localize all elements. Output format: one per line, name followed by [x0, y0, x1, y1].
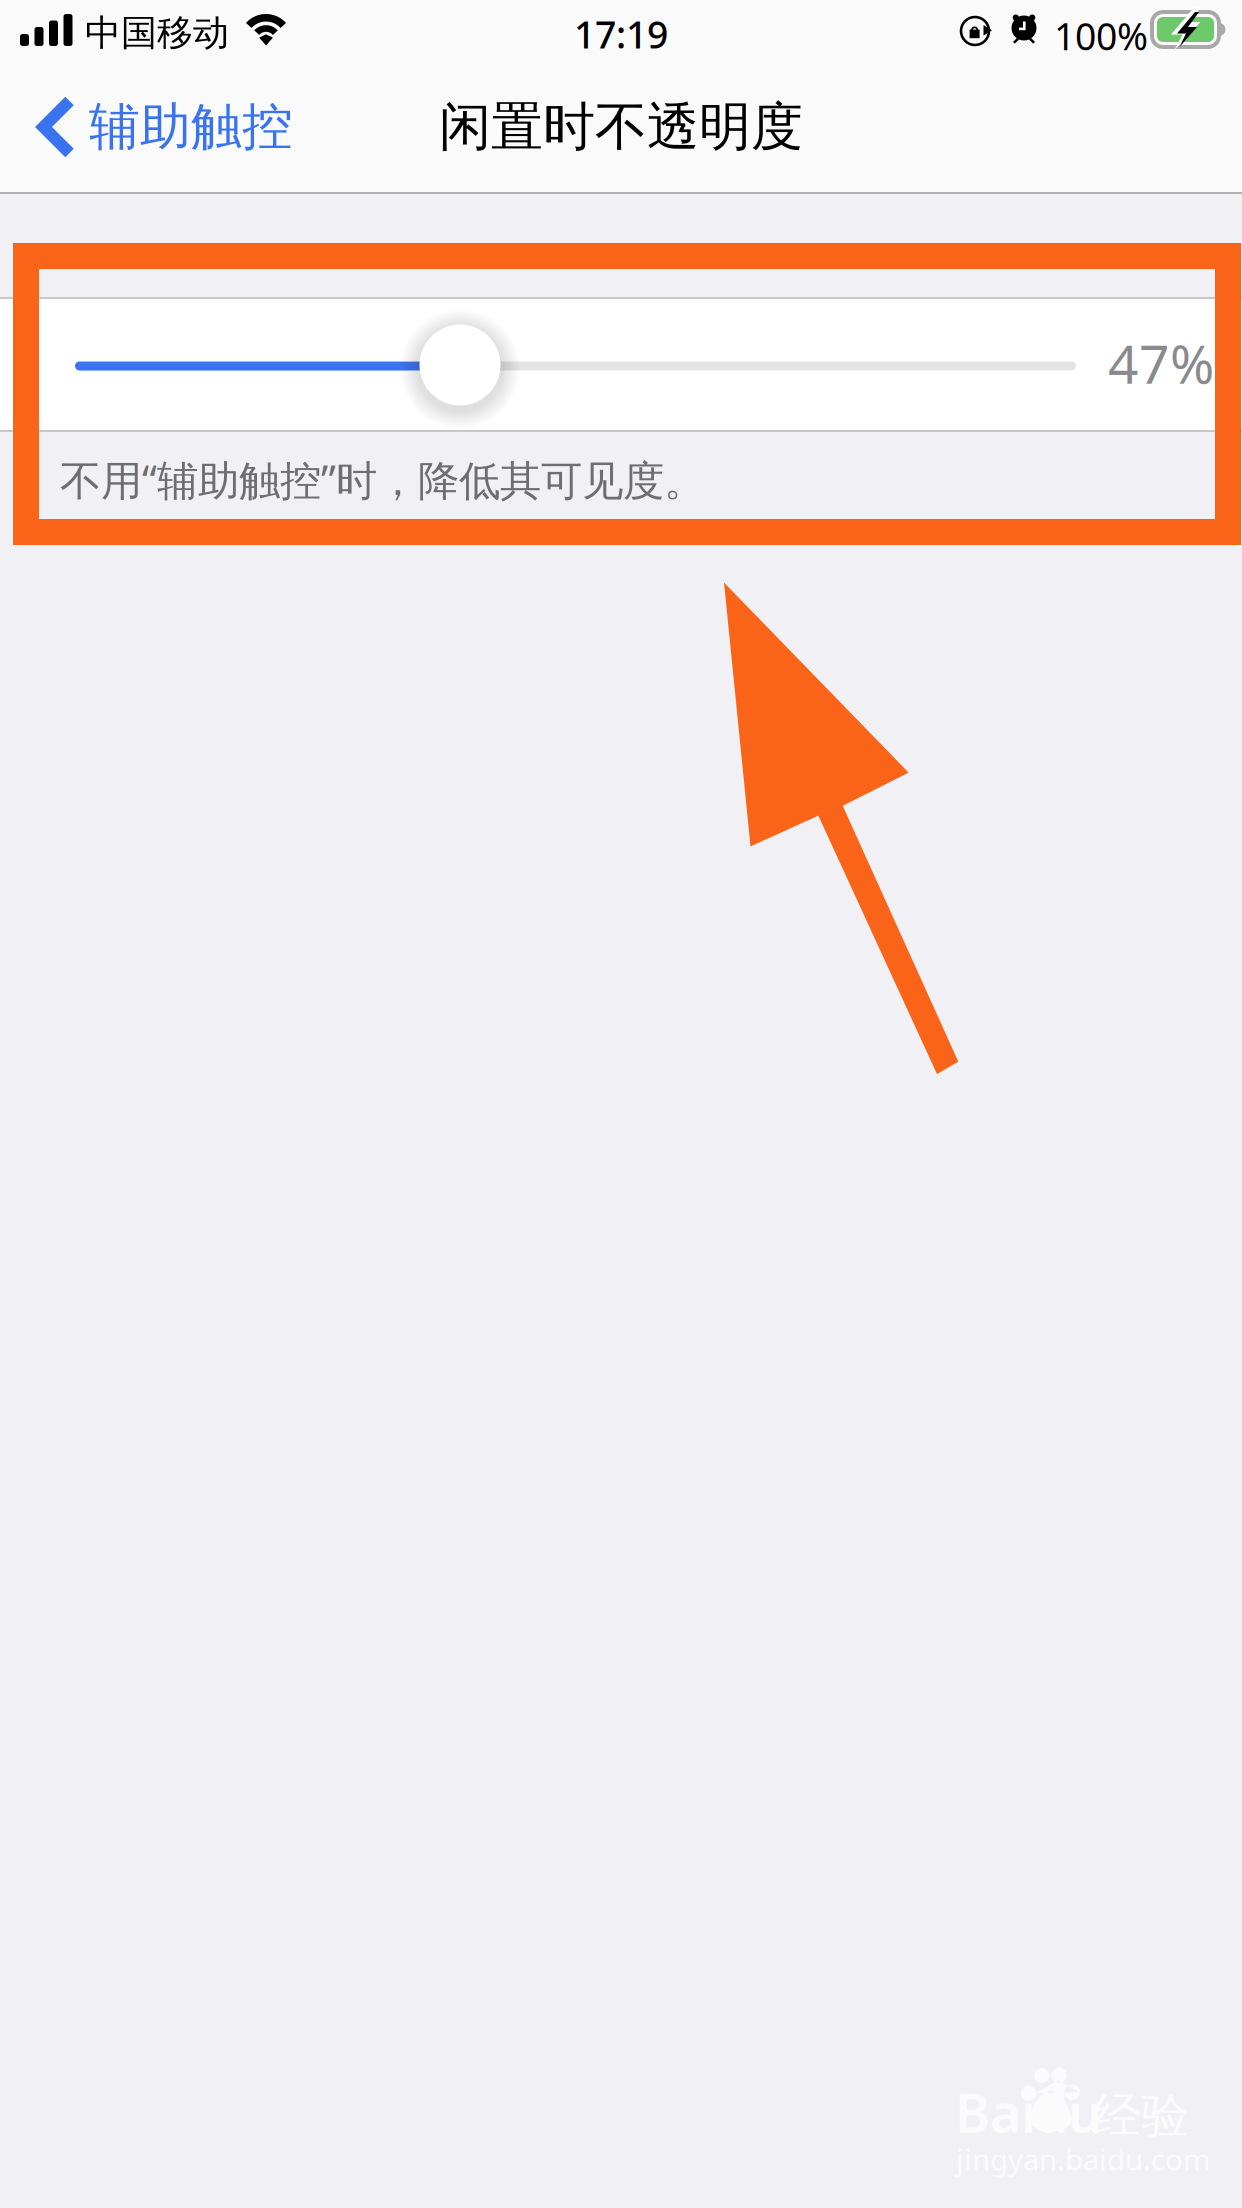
staticText: 闲置时不透明度: [439, 95, 803, 159]
staticText: 中国移动: [85, 11, 229, 55]
staticText: 100%: [1054, 11, 1148, 61]
staticText: 经验: [1093, 2086, 1189, 2145]
staticText: jingyan.baidu.com: [956, 2139, 1210, 2178]
staticText: du: [1035, 2077, 1102, 2147]
staticText: 不用“辅助触控”时，降低其可见度。: [60, 452, 705, 507]
button[interactable]: 闲置时不透明度 47%: [0, 299, 1242, 430]
staticText: 辅助触控: [89, 96, 293, 158]
button[interactable]: 辅助触控: [0, 62, 319, 192]
staticText: 47%: [1108, 328, 1214, 398]
staticText: Bai: [955, 2077, 1036, 2147]
staticText: 17:19: [574, 9, 668, 59]
